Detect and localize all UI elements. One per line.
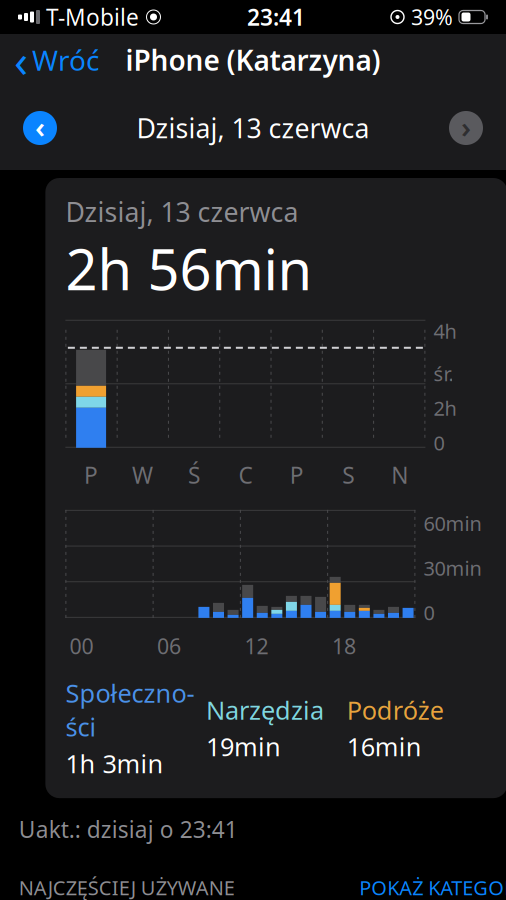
staticText: śr. xyxy=(433,360,453,387)
button[interactable]: Następny dzień xyxy=(442,104,490,152)
staticText: Dzisiaj, 13 czerwca xyxy=(65,194,298,229)
button[interactable]: Poprzedni dzień xyxy=(16,104,64,152)
staticText: Narzędzia xyxy=(206,693,324,727)
staticText: 16min xyxy=(347,730,422,763)
staticText: 1h 3min xyxy=(65,746,163,780)
staticText: Podróże xyxy=(347,693,444,727)
staticText: 23:41 xyxy=(247,2,305,32)
staticText: 0 xyxy=(433,429,444,456)
staticText: Społeczności xyxy=(65,676,194,743)
staticText: P xyxy=(84,460,98,490)
staticText: 2h xyxy=(433,395,456,421)
staticText: T-Mobile xyxy=(46,2,139,32)
staticText: 60min xyxy=(423,510,481,536)
staticText: 00 xyxy=(69,632,93,660)
staticText: 19min xyxy=(206,730,281,763)
staticText: 39% xyxy=(411,3,453,31)
staticText: › xyxy=(461,107,471,146)
staticText: C xyxy=(238,460,252,490)
button[interactable]: ‹ xyxy=(0,24,99,96)
staticText: ‹ xyxy=(14,30,28,90)
staticText: 18 xyxy=(332,632,356,660)
staticText: 4h xyxy=(433,318,456,344)
staticText: P xyxy=(290,460,304,490)
staticText: W xyxy=(132,460,153,490)
staticText: 30min xyxy=(423,555,481,581)
staticText: Wróć xyxy=(32,41,99,79)
staticText: Dzisiaj, 13 czerwca xyxy=(136,110,369,146)
staticText: N xyxy=(391,460,408,490)
staticText: POKAŻ KATEGORIE xyxy=(359,874,506,900)
staticText: 2h 56min xyxy=(65,231,312,306)
staticText: iPhone (Katarzyna) xyxy=(125,41,380,79)
staticText: S xyxy=(342,460,354,490)
staticText: NAJCZĘŚCIEJ UŻYWANE xyxy=(19,874,235,900)
staticText: ‹ xyxy=(35,107,45,146)
staticText: 12 xyxy=(244,632,268,660)
staticText: Ś xyxy=(188,460,200,490)
staticText: Uakt.: dzisiaj o 23:41 xyxy=(19,814,238,844)
button[interactable]: POKAŻ KATEGORIE xyxy=(359,870,506,900)
staticText: 06 xyxy=(157,632,181,660)
staticText: 0 xyxy=(423,599,434,626)
